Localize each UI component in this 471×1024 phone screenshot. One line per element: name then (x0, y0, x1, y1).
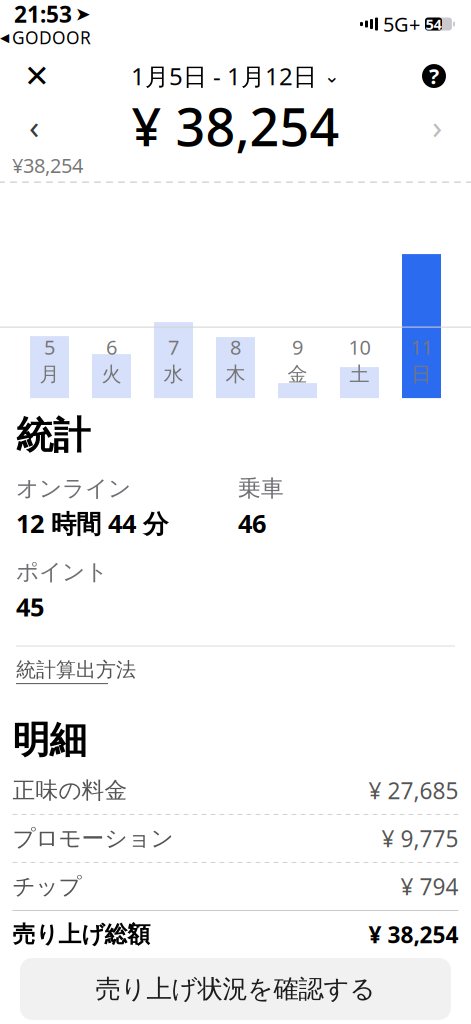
button[interactable]: 閉じる (14, 53, 60, 99)
staticText: 5 (44, 334, 55, 360)
staticText: 売り上げ総額 (12, 920, 150, 948)
button[interactable]: 1月5日 - 1月12日 (121, 54, 350, 98)
staticText: 統計算出方法 (16, 657, 136, 682)
staticText: 売り上げ状況を確認する (95, 973, 375, 1004)
staticText: 土 (349, 362, 369, 387)
staticText: 正味の料金 (12, 776, 127, 804)
staticText: 明細 (12, 717, 86, 763)
staticText: 9 (292, 334, 303, 360)
button[interactable]: 売り上げ状況を確認する (20, 958, 451, 1020)
staticText: GODOOR (12, 26, 91, 49)
staticText: 12 時間 44 分 (16, 506, 168, 540)
staticText: 11 (410, 334, 432, 360)
staticText: 8 (230, 334, 241, 360)
staticText: ? (429, 62, 439, 90)
staticText: 乗車 (238, 475, 284, 502)
staticText: ポイント (16, 558, 108, 586)
staticText: 10 (348, 334, 370, 360)
staticText: 1月5日 - 1月12日 (131, 60, 317, 92)
button[interactable]: ヘルプ (411, 53, 457, 99)
staticText: ¥ 9,775 (381, 823, 458, 853)
staticText: チップ (12, 872, 81, 900)
staticText: ◀ (0, 31, 9, 44)
staticText: ¥ 27,685 (368, 775, 458, 805)
staticText: 木 (225, 362, 245, 387)
staticText: ¥38,254 (12, 152, 83, 179)
staticText: 7 (168, 334, 179, 360)
staticText: 54 (425, 14, 441, 34)
staticText: 46 (238, 506, 266, 540)
staticText: 火 (101, 362, 121, 387)
staticText: ¥ 38,254 (131, 91, 339, 161)
staticText: 月 (39, 362, 59, 387)
staticText: › (432, 104, 442, 148)
staticText: 金 (287, 362, 307, 387)
staticText: プロモーション (12, 824, 173, 852)
staticText: 水 (163, 362, 183, 387)
staticText: 21:53 (14, 0, 72, 29)
staticText: ¥ 794 (400, 871, 458, 901)
button[interactable]: 次の週 (415, 104, 459, 148)
staticText: 45 (16, 590, 44, 623)
button[interactable]: 前の週 (12, 104, 56, 148)
staticText: ➤ (75, 3, 91, 25)
staticText: 統計 (16, 413, 90, 459)
staticText: ⌄ (324, 65, 340, 87)
staticText: オンライン (16, 475, 131, 502)
staticText: 5G+ (383, 11, 420, 37)
button[interactable]: 統計算出方法 (16, 646, 136, 695)
staticText: 6 (106, 334, 117, 360)
staticText: ✕ (24, 59, 50, 93)
staticText: ¥ 38,254 (368, 919, 458, 949)
staticText: ‹ (29, 104, 39, 148)
staticText: 日 (411, 362, 431, 387)
